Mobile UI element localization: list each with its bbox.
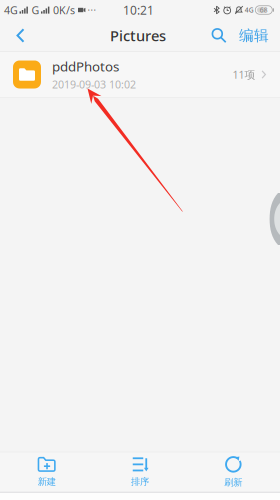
button[interactable]: 排序 [93,453,187,492]
staticText: 排序 [131,476,149,487]
staticText: 4G [245,6,254,14]
staticText: pddPhotos [52,58,119,75]
button[interactable]: 刷新 [187,453,280,492]
staticText: 刷新 [224,477,242,488]
staticText: 4G [4,3,18,17]
button[interactable]: pddPhotos [0,52,280,97]
button[interactable]: 编辑 [234,21,274,49]
button[interactable]: 新建 [0,453,93,492]
staticText: 68 [260,6,268,14]
staticText: Pictures [110,26,166,45]
staticText: 编辑 [239,26,269,44]
staticText: G [31,3,39,17]
staticText: 0K/s [53,3,75,17]
button[interactable]: Back [2,20,39,50]
staticText: 2019-09-03 10:02 [52,77,136,91]
button[interactable]: Search [204,21,234,49]
staticText: 新建 [38,476,56,487]
staticText: ··· [88,4,97,16]
staticText: 10:21 [123,2,154,18]
staticText: 11项 [232,67,255,82]
